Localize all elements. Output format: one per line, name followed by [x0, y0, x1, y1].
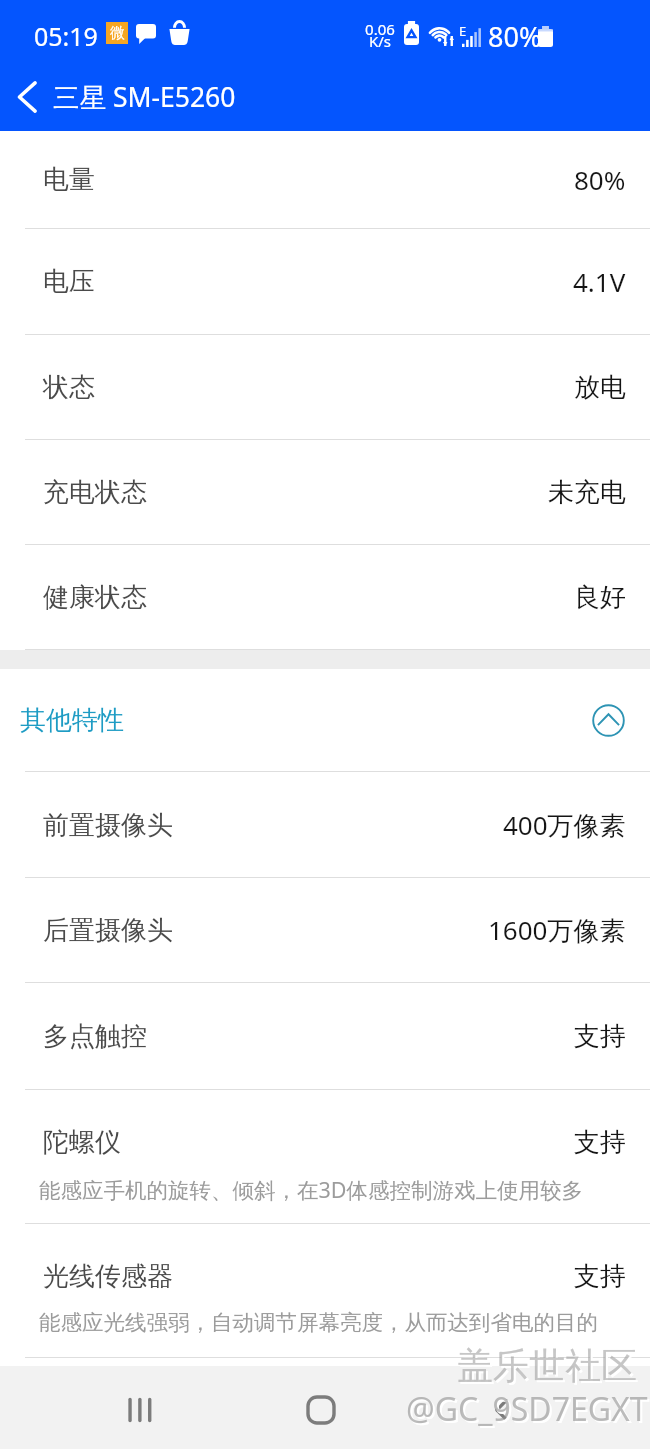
- button[interactable]: Home: [282, 1371, 360, 1449]
- staticText: 0.06: [365, 19, 395, 39]
- staticText: 充电状态: [43, 476, 147, 509]
- staticText: 盖乐世社区: [457, 1343, 637, 1388]
- staticText: K/s: [365, 31, 395, 51]
- staticText: 能感应手机的旋转、倾斜，在3D体感控制游戏上使用较多: [39, 1175, 583, 1204]
- button[interactable]: 电量: [0, 131, 650, 228]
- staticText: 支持: [574, 1260, 626, 1293]
- staticText: 光线传感器: [43, 1260, 173, 1293]
- staticText: 微: [110, 24, 125, 43]
- staticText: 未充电: [548, 476, 626, 509]
- staticText: 05:19: [34, 19, 98, 53]
- staticText: 1600万像素: [488, 912, 626, 948]
- staticText: 80%: [488, 18, 542, 55]
- staticText: 后置摄像头: [43, 914, 173, 947]
- staticText: @GC_9SD7EGXT: [406, 1387, 648, 1431]
- staticText: 电量: [43, 163, 95, 196]
- button[interactable]: 后置摄像头: [0, 878, 650, 982]
- button[interactable]: 状态: [0, 335, 650, 439]
- button[interactable]: 多点触控: [0, 983, 650, 1089]
- button[interactable]: Back: [463, 1371, 541, 1449]
- button[interactable]: Recents: [101, 1371, 179, 1449]
- staticText: 电压: [43, 265, 95, 298]
- staticText: 支持: [574, 1020, 626, 1053]
- staticText: 状态: [43, 371, 95, 404]
- staticText: 其他特性: [20, 704, 124, 737]
- staticText: 支持: [574, 1126, 626, 1159]
- staticText: 健康状态: [43, 581, 147, 614]
- staticText: 80%: [574, 162, 626, 197]
- button[interactable]: 电压: [0, 229, 650, 334]
- button[interactable]: 充电状态: [0, 440, 650, 544]
- staticText: 前置摄像头: [43, 809, 173, 842]
- staticText: 400万像素: [503, 807, 626, 843]
- staticText: 陀螺仪: [43, 1126, 121, 1159]
- staticText: 盖乐世社区: [459, 1345, 639, 1390]
- staticText: 放电: [574, 371, 626, 404]
- button[interactable]: 光线传感器: [0, 1224, 650, 1357]
- button[interactable]: Back: [1, 71, 53, 123]
- staticText: 多点触控: [43, 1020, 147, 1053]
- staticText: 能感应光线强弱，自动调节屏幕亮度，从而达到省电的目的: [39, 1309, 598, 1336]
- button[interactable]: 其他特性: [0, 669, 650, 771]
- staticText: @GC_9SD7EGXT: [408, 1389, 650, 1433]
- staticText: E: [459, 22, 467, 40]
- staticText: 三星 SM-E5260: [53, 79, 236, 115]
- staticText: 良好: [574, 581, 626, 614]
- staticText: 4.1V: [573, 264, 626, 299]
- button[interactable]: 前置摄像头: [0, 772, 650, 877]
- button[interactable]: 陀螺仪: [0, 1090, 650, 1223]
- button[interactable]: 健康状态: [0, 545, 650, 649]
